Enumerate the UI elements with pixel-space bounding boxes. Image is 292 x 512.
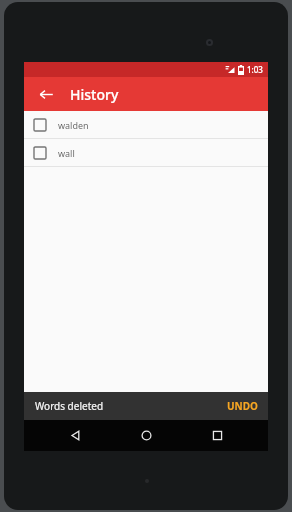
button[interactable]: wall bbox=[24, 139, 268, 166]
staticText: walden bbox=[58, 119, 89, 131]
staticText: 1:03 bbox=[247, 64, 263, 75]
button[interactable]: UNDO bbox=[217, 394, 268, 418]
staticText: History bbox=[70, 85, 119, 104]
staticText: wall bbox=[58, 147, 75, 159]
staticText: Words deleted bbox=[35, 399, 104, 413]
button[interactable]: walden bbox=[24, 111, 268, 138]
staticText: UNDO bbox=[227, 399, 258, 413]
button[interactable]: Back bbox=[55, 420, 95, 451]
button[interactable]: Back bbox=[32, 80, 60, 108]
button[interactable]: Recents bbox=[197, 420, 237, 451]
button[interactable]: Home bbox=[126, 420, 166, 451]
